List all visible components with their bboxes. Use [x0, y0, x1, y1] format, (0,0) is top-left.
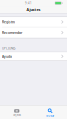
- staticText: Ajustes: [26, 7, 40, 12]
- staticText: Buscar: [46, 114, 54, 118]
- staticText: 9:41: [25, 1, 32, 5]
- button[interactable]: Buscar: [33, 105, 67, 119]
- staticText: Recomendar: [2, 30, 22, 35]
- button[interactable]: Tarjetas: [0, 105, 33, 119]
- staticText: Ayuda: [2, 54, 12, 59]
- staticText: Tarjetas: [13, 113, 21, 117]
- button[interactable]: Registro: [0, 17, 67, 27]
- button[interactable]: Recomendar: [0, 27, 67, 38]
- button[interactable]: Ayuda: [0, 52, 67, 61]
- staticText: OPCIONES: [2, 46, 15, 50]
- staticText: Registro: [2, 20, 15, 24]
